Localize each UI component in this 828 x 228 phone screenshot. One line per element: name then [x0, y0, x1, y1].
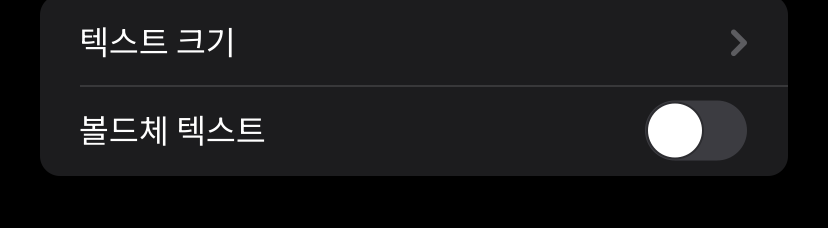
button[interactable]: 텍스트 크기	[40, 0, 788, 85]
button[interactable]: 볼드체 텍스트	[40, 83, 788, 174]
staticText: 텍스트 크기	[79, 16, 236, 63]
staticText: 볼드체 텍스트	[79, 105, 266, 152]
